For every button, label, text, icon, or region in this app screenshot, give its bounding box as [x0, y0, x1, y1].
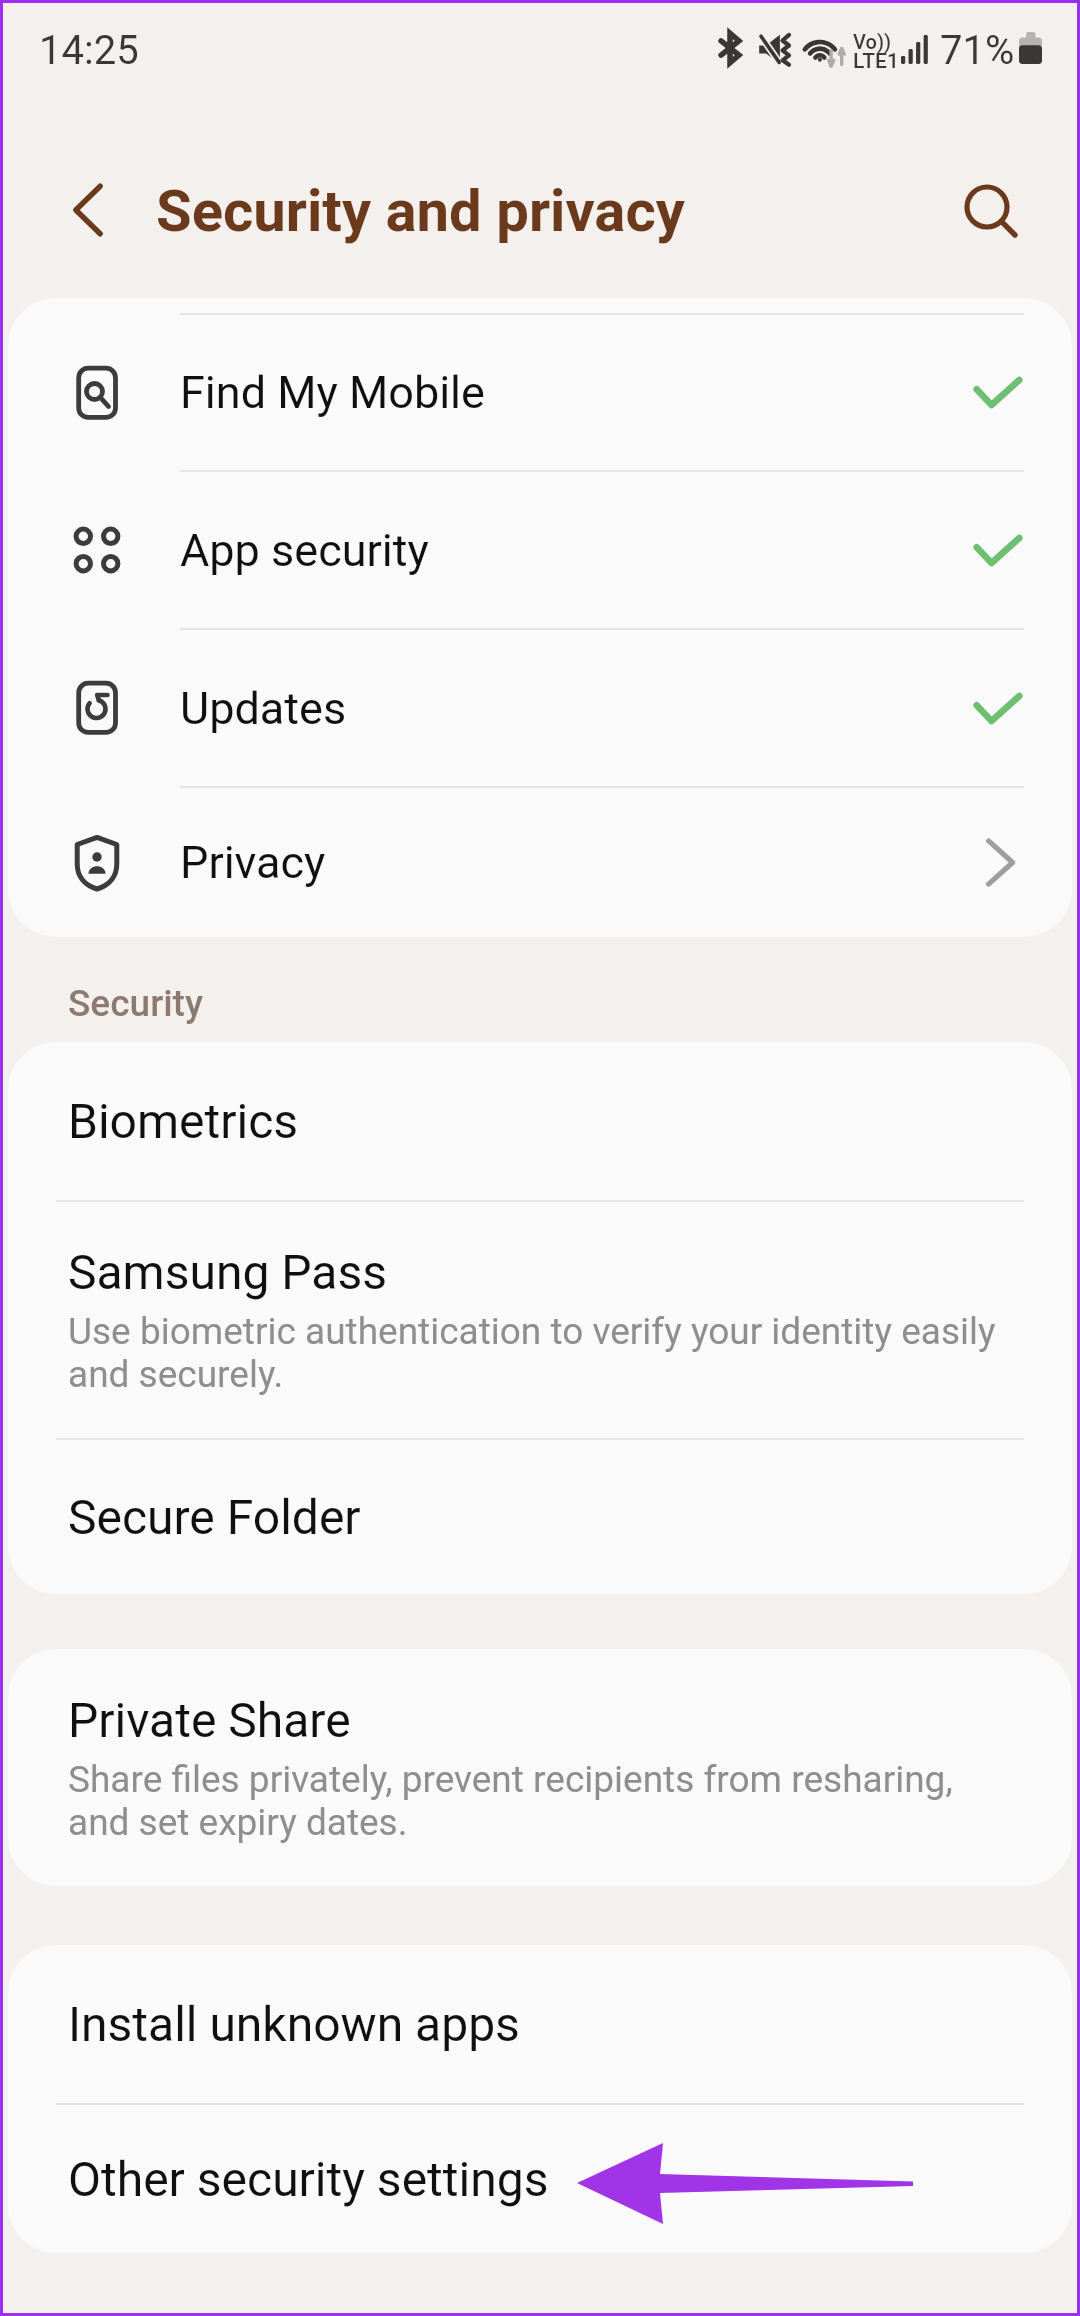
button[interactable]: App security	[8, 472, 1072, 628]
button[interactable]: Updates	[8, 630, 1072, 786]
staticText: LTE1	[853, 49, 899, 74]
staticText: Secure Folder	[68, 1489, 361, 1545]
button[interactable]: Search	[937, 162, 1017, 242]
button[interactable]: Navigate up	[48, 170, 128, 250]
staticText: Other security settings	[68, 2151, 549, 2207]
staticText: 71%	[940, 27, 1015, 74]
button[interactable]: Privacy	[8, 788, 1072, 937]
staticText: Biometrics	[68, 1093, 299, 1149]
button[interactable]: Samsung Pass	[8, 1202, 1072, 1438]
staticText: Security	[68, 982, 203, 1025]
staticText: Find My Mobile	[180, 366, 908, 419]
staticText: Samsung Pass	[68, 1244, 387, 1300]
staticText: Install unknown apps	[68, 1996, 520, 2052]
button[interactable]: Secure Folder	[8, 1440, 1072, 1594]
staticText: App security	[180, 524, 908, 577]
button[interactable]: Biometrics	[8, 1042, 1072, 1200]
button[interactable]: Other security settings	[8, 2105, 1072, 2253]
staticText: Security and privacy	[156, 177, 685, 245]
staticText: Updates	[180, 682, 908, 735]
button[interactable]: Private Share	[8, 1649, 1072, 1886]
staticText: Share files privately, prevent recipient…	[68, 1758, 1012, 1844]
staticText: Private Share	[68, 1692, 351, 1748]
button[interactable]: Install unknown apps	[8, 1945, 1072, 2103]
button[interactable]: Find My Mobile	[8, 315, 1072, 470]
staticText: Privacy	[180, 836, 908, 889]
staticText: Vo))	[853, 30, 892, 53]
staticText: 14:25	[39, 27, 139, 74]
staticText: Use biometric authentication to verify y…	[68, 1310, 1012, 1396]
